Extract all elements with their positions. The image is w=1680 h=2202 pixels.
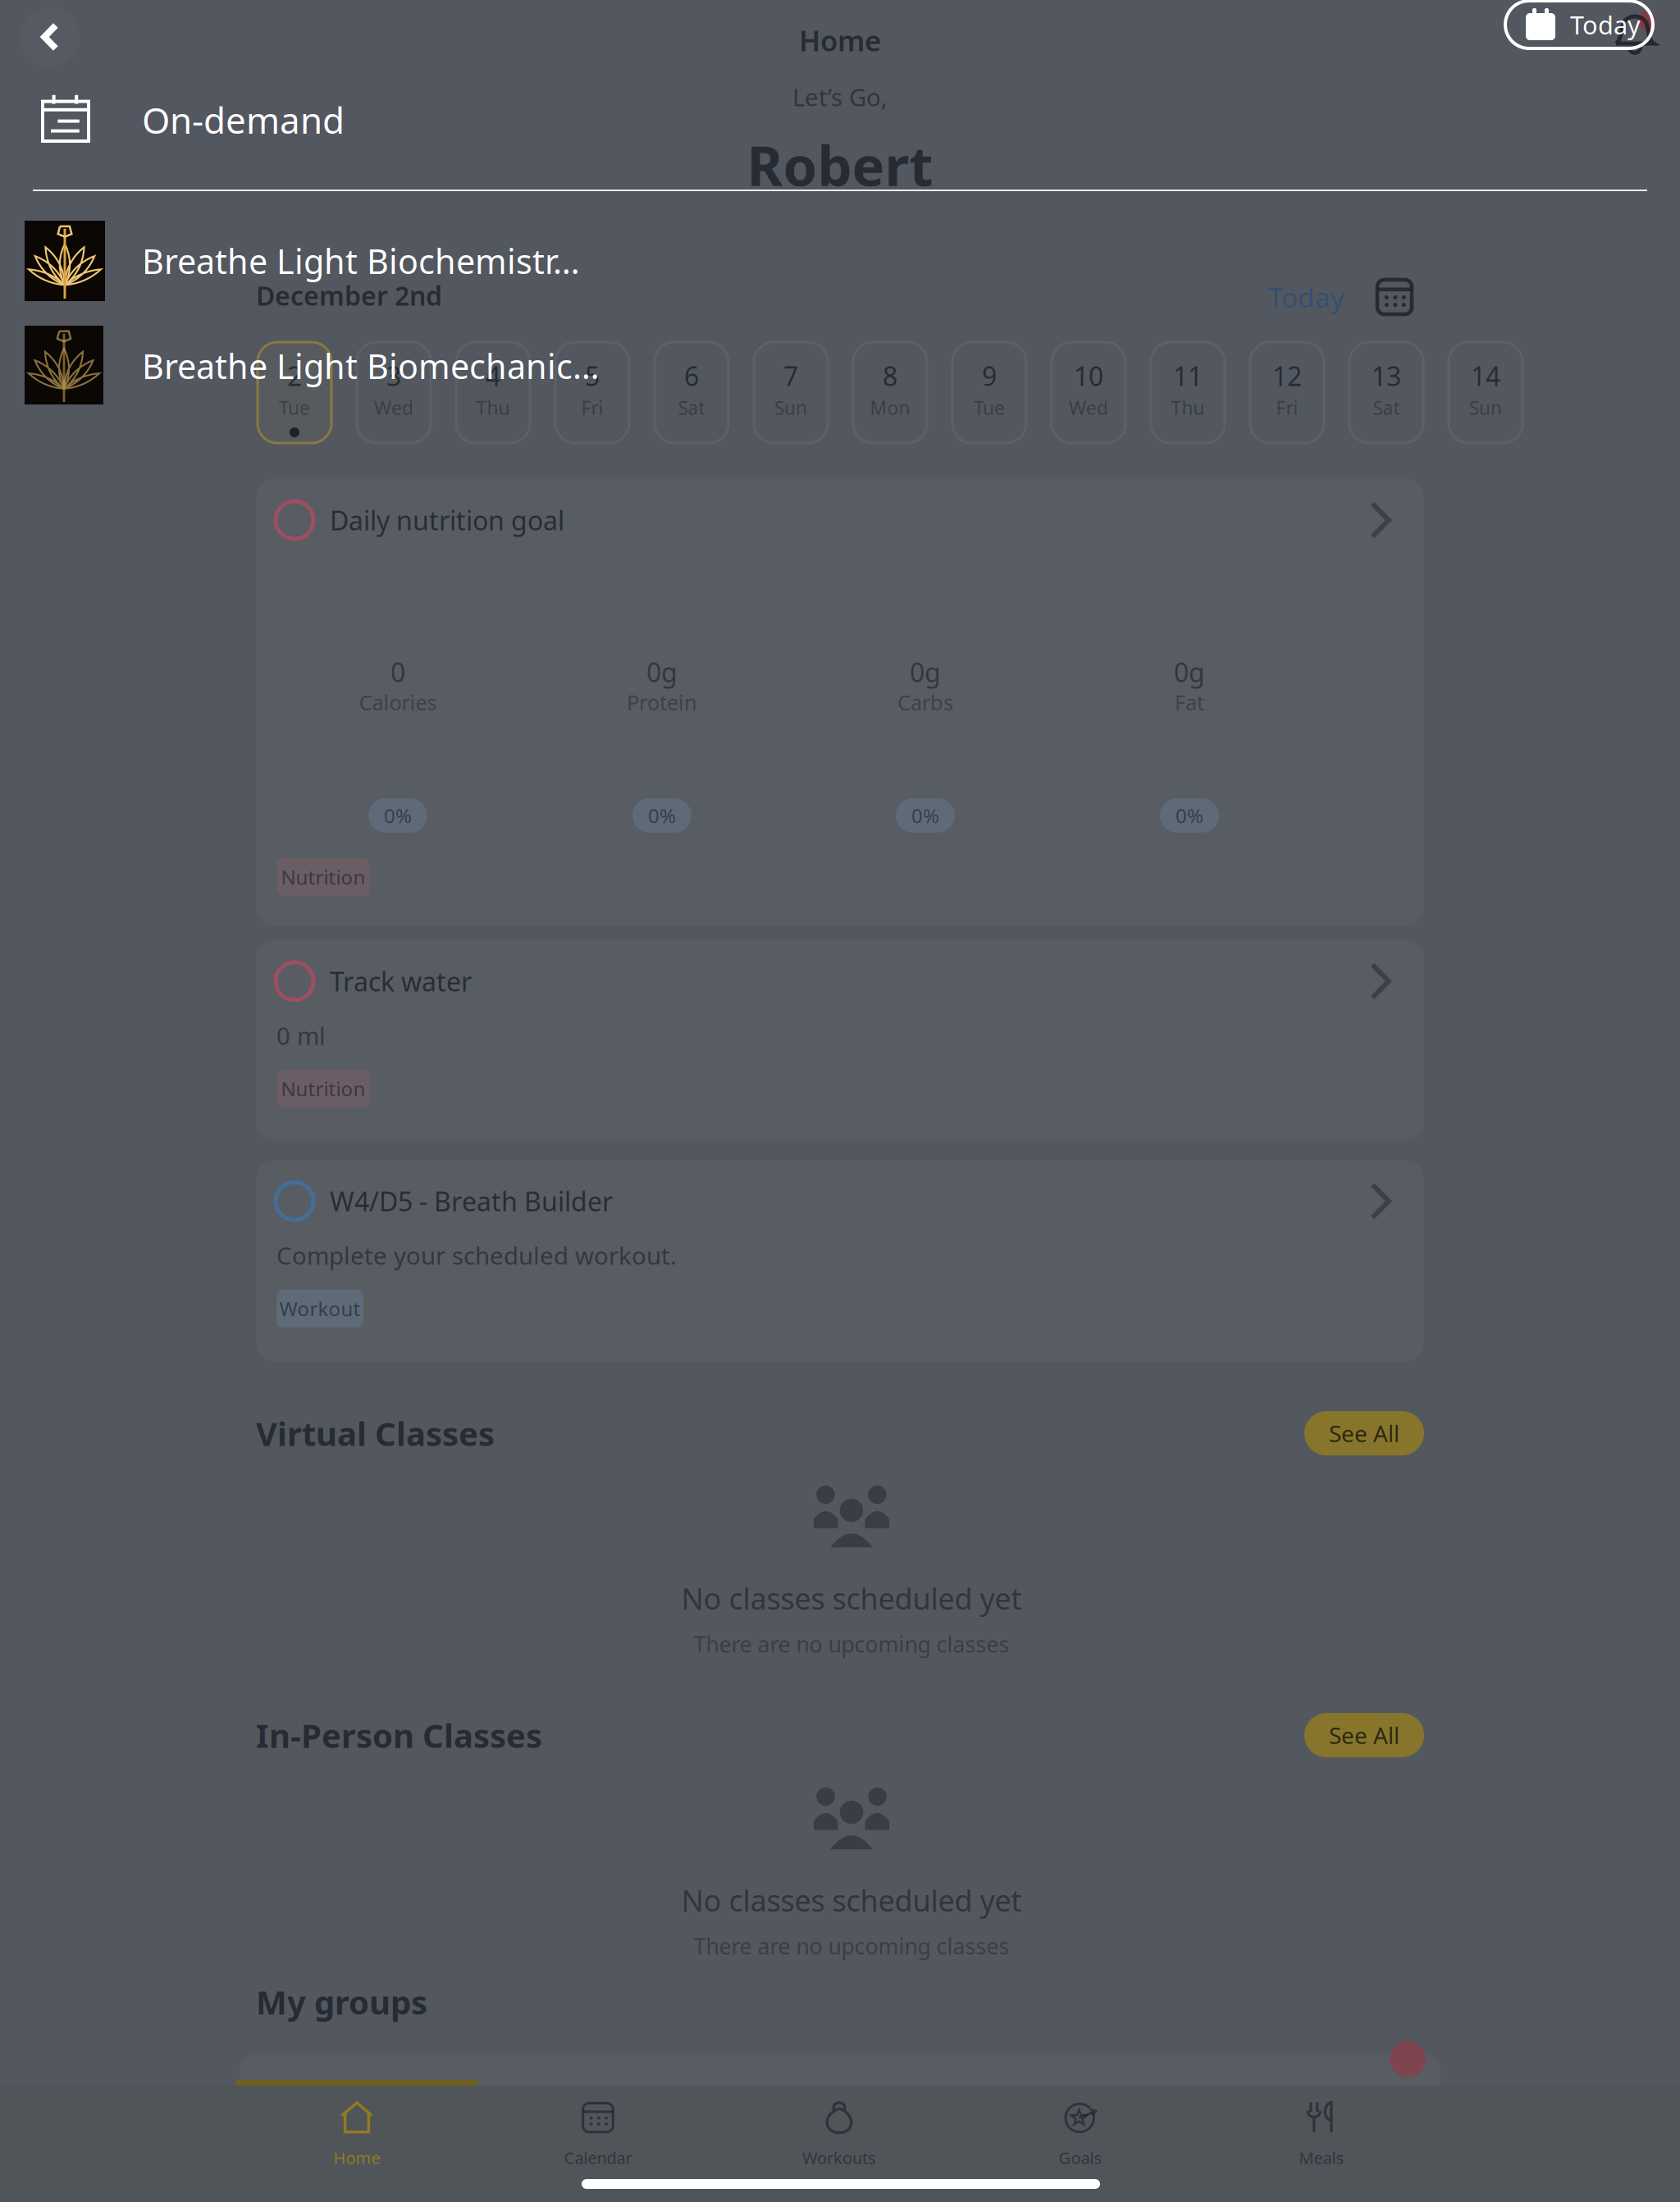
staticText: Sun: [1469, 395, 1502, 420]
staticText: 4: [486, 358, 500, 393]
staticText: Tue: [279, 395, 310, 420]
staticText: 0%: [648, 802, 676, 829]
staticText: Fat: [1175, 688, 1204, 716]
button[interactable]: 6: [655, 342, 728, 443]
staticText: Let’s Go,: [792, 81, 888, 113]
button[interactable]: Track water: [256, 940, 1424, 1140]
button[interactable]: 5: [555, 342, 629, 443]
button[interactable]: 13: [1349, 342, 1423, 443]
staticText: 0g: [910, 655, 941, 689]
staticText: 3: [386, 358, 401, 393]
button[interactable]: 7: [754, 342, 828, 443]
staticText: 0g: [1174, 655, 1205, 689]
staticText: Goals: [1059, 2147, 1102, 2169]
staticText: Nutrition: [281, 1076, 365, 1102]
button[interactable]: Today: [1505, 1, 1653, 48]
button[interactable]: 10: [1052, 342, 1125, 443]
staticText: 0: [390, 655, 405, 689]
staticText: Fri: [1276, 395, 1298, 420]
staticText: December 2nd: [256, 278, 442, 313]
staticText: Breathe Light Biochemistr…: [142, 238, 580, 283]
staticText: My groups: [256, 1980, 427, 2024]
staticText: Today: [1268, 279, 1344, 315]
staticText: Sat: [678, 395, 705, 420]
button[interactable]: Breathe Light Biomechanic…: [0, 0, 1680, 2202]
staticText: Complete your scheduled workout.: [276, 1239, 677, 1271]
staticText: Breath Ex… 4/8: [251, 2074, 427, 2106]
button[interactable]: 2: [258, 342, 331, 443]
staticText: Sat: [1373, 395, 1400, 420]
staticText: Workouts: [802, 2147, 876, 2169]
staticText: Sun: [774, 395, 807, 420]
staticText: Robert: [747, 129, 933, 201]
staticText: Wed: [1069, 395, 1108, 420]
button[interactable]: 3: [357, 342, 431, 443]
button[interactable]: Workouts: [774, 2095, 905, 2174]
button[interactable]: 11: [1151, 342, 1225, 443]
staticText: No classes scheduled yet: [681, 1579, 1022, 1618]
staticText: Thu: [1171, 395, 1205, 420]
staticText: 13: [1372, 358, 1401, 393]
staticText: In-Person Classes: [256, 1713, 542, 1757]
staticText: 11: [1173, 358, 1203, 393]
staticText: Meals: [1299, 2147, 1344, 2169]
button[interactable]: 8: [853, 342, 927, 443]
staticText: No classes scheduled yet: [681, 1880, 1022, 1920]
staticText: Tue: [974, 395, 1005, 420]
button[interactable]: Daily nutrition goal: [256, 479, 1424, 925]
staticText: W4/D5 - Breath Builder: [330, 1184, 613, 1219]
button[interactable]: 4: [456, 342, 530, 443]
staticText: Workout: [279, 1296, 361, 1322]
staticText: See All: [1329, 1418, 1399, 1449]
staticText: 8: [883, 358, 897, 393]
button[interactable]: W4/D5 - Breath Builder: [256, 1160, 1424, 1362]
staticText: 0 ml: [276, 1019, 326, 1051]
staticText: Daily nutrition goal: [330, 503, 564, 538]
staticText: Today: [1570, 8, 1641, 41]
staticText: Breathe Light Biomechanic…: [142, 343, 600, 388]
staticText: 0%: [1176, 802, 1203, 829]
staticText: 9: [982, 358, 997, 393]
staticText: Calories: [359, 688, 437, 716]
button[interactable]: See All: [1304, 1713, 1424, 1757]
staticText: There are no upcoming classes: [694, 1932, 1009, 1961]
staticText: There are no upcoming classes: [694, 1630, 1009, 1659]
staticText: See All: [1329, 1720, 1399, 1750]
button[interactable]: 9: [952, 342, 1026, 443]
button[interactable]: Goals: [1015, 2095, 1146, 2174]
staticText: On-demand: [142, 96, 345, 144]
staticText: 0%: [384, 802, 412, 829]
staticText: 12: [1272, 358, 1302, 393]
staticText: 2: [287, 358, 302, 393]
button[interactable]: 14: [1449, 342, 1522, 443]
staticText: 14: [1471, 358, 1500, 393]
button[interactable]: On-demand: [0, 0, 1680, 2202]
button[interactable]: Meals: [1256, 2095, 1387, 2174]
staticText: 0%: [911, 802, 939, 829]
staticText: 7: [783, 358, 798, 393]
staticText: 10: [1074, 358, 1103, 393]
staticText: 6: [684, 358, 699, 393]
staticText: Track water: [330, 964, 472, 999]
button[interactable]: Breathe Light Biochemistr…: [0, 0, 1680, 2202]
staticText: Nutrition: [281, 864, 365, 890]
staticText: Home: [799, 21, 881, 59]
staticText: Carbs: [897, 688, 953, 716]
staticText: 0g: [646, 655, 678, 689]
staticText: Wed: [374, 395, 413, 420]
button[interactable]: Back: [21, 7, 80, 66]
button[interactable]: Calendar: [532, 2095, 664, 2174]
staticText: Virtual Classes: [256, 1411, 495, 1455]
staticText: Fri: [581, 395, 603, 420]
button[interactable]: Today: [1263, 276, 1424, 318]
staticText: Protein: [627, 688, 697, 716]
staticText: Home: [333, 2147, 380, 2169]
staticText: 5: [585, 358, 600, 393]
button[interactable]: See All: [1304, 1411, 1424, 1455]
staticText: Thu: [476, 395, 510, 420]
staticText: Calendar: [564, 2147, 632, 2169]
button[interactable]: 12: [1250, 342, 1324, 443]
button[interactable]: Home: [291, 2095, 422, 2174]
staticText: Mon: [870, 395, 910, 420]
